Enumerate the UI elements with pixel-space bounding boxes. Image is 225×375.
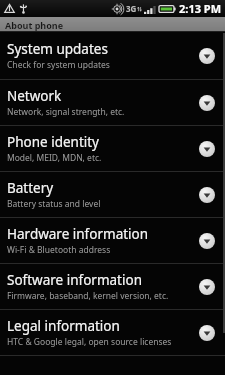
staticText: Firmware, baseband, kernel version, etc. <box>7 290 169 302</box>
staticText: About phone <box>5 19 64 31</box>
button[interactable]: Phone identity <box>0 126 225 172</box>
staticText: Wi-Fi & Bluetooth address <box>7 244 111 256</box>
staticText: System updates <box>7 40 108 58</box>
button[interactable]: System updates <box>0 32 225 80</box>
button[interactable]: Expand Legal information <box>196 322 218 344</box>
staticText: Phone identity <box>7 133 100 151</box>
staticText: Network, signal strength, etc. <box>7 106 125 118</box>
staticText: Legal information <box>7 317 120 335</box>
button[interactable]: Expand System updates <box>196 45 218 67</box>
button[interactable]: Expand Hardware information <box>196 230 218 252</box>
staticText: Model, MEID, MDN, etc. <box>7 152 102 164</box>
button[interactable]: Legal information <box>0 310 225 356</box>
button[interactable]: Expand Phone identity <box>196 138 218 160</box>
staticText: 2:13 PM <box>179 1 222 16</box>
staticText: Network <box>7 87 62 105</box>
button[interactable]: Expand Software information <box>196 276 218 298</box>
button[interactable]: Software information <box>0 264 225 310</box>
button[interactable]: Expand Network <box>196 92 218 114</box>
button[interactable]: Expand Battery <box>196 184 218 206</box>
staticText: Hardware information <box>7 225 149 243</box>
button[interactable]: Hardware information <box>0 218 225 264</box>
staticText: Battery <box>7 179 54 197</box>
staticText: HTC & Google legal, open source licenses <box>7 336 172 348</box>
staticText: Software information <box>7 271 142 289</box>
staticText: Check for system updates <box>7 59 110 71</box>
staticText: 3G <box>126 3 137 14</box>
button[interactable]: Network <box>0 80 225 126</box>
button[interactable]: Battery <box>0 172 225 218</box>
staticText: Battery status and level <box>7 198 101 210</box>
